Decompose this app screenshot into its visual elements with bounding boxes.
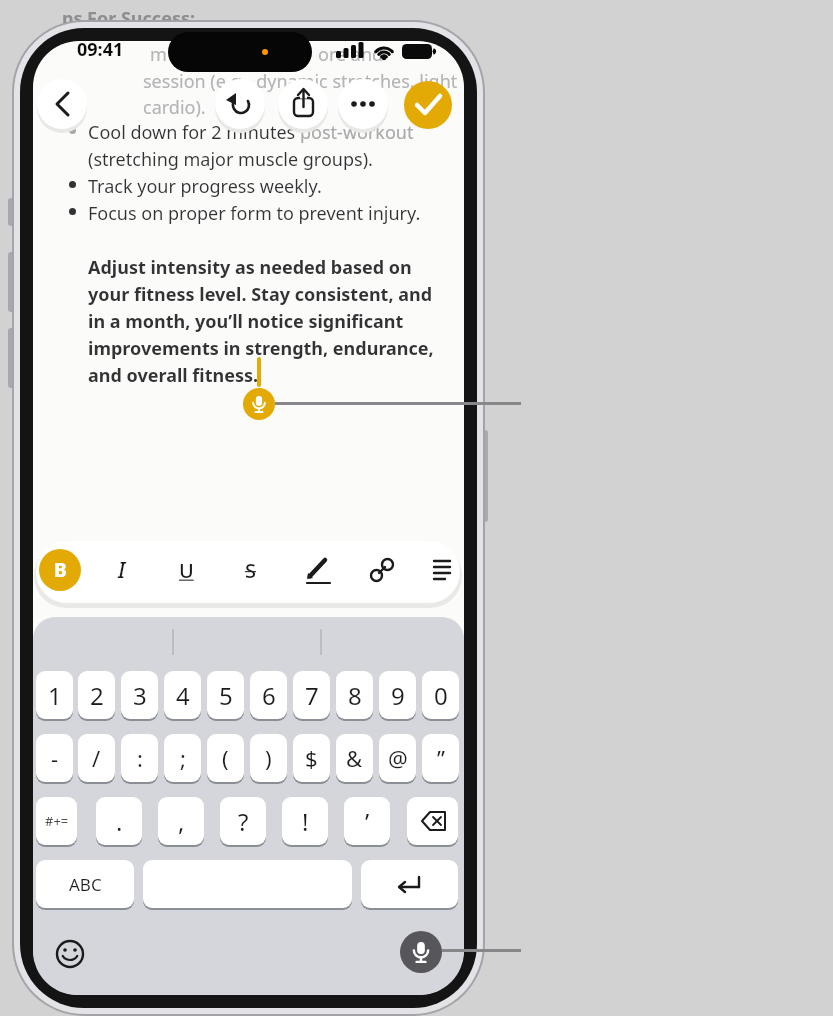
staticText: 2 bbox=[90, 679, 104, 712]
staticText: 09:41 bbox=[77, 37, 124, 62]
button[interactable] bbox=[364, 552, 400, 588]
staticText: : bbox=[137, 743, 143, 773]
button[interactable]: $ bbox=[293, 734, 330, 782]
staticText: #+= bbox=[45, 812, 69, 830]
button[interactable]: 8 bbox=[336, 671, 373, 719]
button[interactable] bbox=[404, 81, 452, 129]
button[interactable]: 6 bbox=[250, 671, 287, 719]
button[interactable] bbox=[56, 940, 84, 968]
staticText: / bbox=[92, 743, 101, 773]
button[interactable]: & bbox=[336, 734, 373, 782]
button[interactable]: #+= bbox=[36, 797, 77, 845]
button[interactable] bbox=[361, 860, 458, 908]
button[interactable] bbox=[278, 79, 328, 129]
staticText: Adjust intensity as needed based on bbox=[88, 255, 412, 280]
button[interactable] bbox=[400, 931, 442, 973]
staticText: S bbox=[245, 557, 256, 584]
staticText: 1 bbox=[48, 679, 62, 712]
button[interactable]: ; bbox=[164, 734, 201, 782]
staticText: U bbox=[179, 557, 194, 584]
button[interactable] bbox=[243, 388, 275, 420]
button[interactable]: ( bbox=[207, 734, 244, 782]
button[interactable]: 0 bbox=[422, 671, 459, 719]
staticText: ( bbox=[222, 743, 229, 773]
staticText: improvements in strength, endurance, bbox=[88, 336, 434, 361]
staticText: in a month, you’ll notice significant bbox=[88, 309, 404, 334]
button[interactable]: B bbox=[39, 549, 81, 591]
staticText: ABC bbox=[69, 873, 102, 896]
staticText: ; bbox=[180, 743, 186, 773]
button[interactable]: 3 bbox=[121, 671, 158, 719]
staticText: Focus on proper form to prevent injury. bbox=[88, 201, 421, 226]
button[interactable]: U bbox=[168, 552, 204, 588]
button[interactable]: . bbox=[96, 797, 142, 845]
button[interactable] bbox=[424, 552, 460, 588]
staticText: and overall fitness. bbox=[88, 363, 259, 388]
button[interactable]: - bbox=[36, 734, 73, 782]
staticText: ) bbox=[265, 743, 272, 773]
button[interactable]: I bbox=[104, 552, 140, 588]
button[interactable] bbox=[338, 79, 388, 129]
staticText: $ bbox=[305, 743, 318, 773]
staticText: ! bbox=[302, 805, 309, 838]
button[interactable]: ? bbox=[220, 797, 266, 845]
staticText: ’ bbox=[365, 805, 370, 838]
staticText: m up bbox=[150, 42, 194, 67]
staticText: B bbox=[54, 557, 67, 583]
staticText: 0 bbox=[434, 679, 448, 712]
button[interactable]: ’ bbox=[344, 797, 390, 845]
button[interactable] bbox=[215, 79, 265, 129]
button[interactable] bbox=[37, 79, 87, 129]
staticText: 3 bbox=[133, 679, 147, 712]
staticText: 4 bbox=[176, 679, 190, 712]
staticText: Track your progress weekly. bbox=[88, 174, 322, 199]
staticText: ? bbox=[238, 805, 249, 838]
staticText: 8 bbox=[348, 679, 362, 712]
staticText: . bbox=[116, 805, 123, 838]
button[interactable] bbox=[407, 797, 458, 845]
staticText: post-workout bbox=[300, 120, 414, 145]
button[interactable] bbox=[300, 552, 336, 588]
button[interactable]: 9 bbox=[379, 671, 416, 719]
staticText: I bbox=[118, 556, 126, 585]
button[interactable]: : bbox=[121, 734, 158, 782]
staticText: your fitness level. Stay consistent, and bbox=[88, 282, 433, 307]
staticText: (stretching major muscle groups). bbox=[88, 147, 373, 172]
staticText: @ bbox=[388, 743, 408, 773]
button[interactable]: ) bbox=[250, 734, 287, 782]
staticText: , bbox=[178, 805, 185, 838]
button[interactable]: 2 bbox=[78, 671, 115, 719]
button[interactable]: / bbox=[78, 734, 115, 782]
button[interactable]: 7 bbox=[293, 671, 330, 719]
staticText: & bbox=[346, 743, 363, 773]
button[interactable]: @ bbox=[379, 734, 416, 782]
staticText: - bbox=[51, 743, 59, 773]
button[interactable]: 5 bbox=[207, 671, 244, 719]
staticText: ps For Success: bbox=[62, 6, 196, 31]
staticText: ore and bbox=[318, 42, 384, 67]
button[interactable]: S bbox=[232, 552, 268, 588]
staticText: 7 bbox=[305, 679, 319, 712]
staticText: ” bbox=[437, 743, 445, 773]
button[interactable]: 4 bbox=[164, 671, 201, 719]
staticText: session (e.g., dynamic stretches, light bbox=[143, 69, 458, 94]
button[interactable]: , bbox=[158, 797, 204, 845]
staticText: Cool down for 2 minutes bbox=[88, 120, 300, 145]
button[interactable]: ABC bbox=[36, 860, 134, 908]
button[interactable] bbox=[143, 860, 352, 908]
staticText: 5 bbox=[219, 679, 233, 712]
staticText: 9 bbox=[391, 679, 405, 712]
button[interactable]: ” bbox=[422, 734, 459, 782]
staticText: cardio). bbox=[143, 95, 206, 120]
staticText: 6 bbox=[262, 679, 276, 712]
button[interactable]: 1 bbox=[36, 671, 73, 719]
button[interactable]: ! bbox=[282, 797, 328, 845]
